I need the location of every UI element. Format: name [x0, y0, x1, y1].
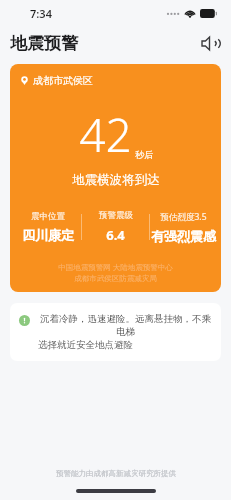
button[interactable]: 沉着冷静，迅速避险。远离悬挂物，不乘电梯	[10, 303, 221, 361]
staticText: 6.4	[106, 226, 125, 244]
staticText: 42	[79, 103, 132, 166]
staticText: 有强烈震感	[151, 228, 216, 244]
staticText: 成都市武侯区	[33, 74, 93, 87]
staticText: 秒后	[135, 149, 153, 160]
staticText: 预警震级	[99, 210, 133, 221]
button[interactable]: 成都市武侯区	[10, 64, 221, 292]
staticText: 地震横波将到达	[72, 172, 160, 188]
staticText: 7:34	[30, 6, 52, 21]
staticText: 四川康定	[22, 227, 74, 243]
staticText: 选择就近安全地点避险	[38, 339, 133, 351]
staticText: 成都市武侯区防震减灾局	[74, 274, 157, 283]
staticText: 震中位置	[31, 211, 65, 222]
staticText: 中国地震预警网 大陆地震预警中心	[58, 262, 173, 272]
staticText: 沉着冷静，迅速避险。远离悬挂物，不乘电梯	[38, 313, 213, 338]
staticText: 预警能力由成都高新减灾研究所提供	[56, 469, 176, 478]
staticText: 地震预警	[10, 33, 78, 54]
button[interactable]: Sound alert	[197, 31, 221, 55]
staticText: 预估烈度3.5	[160, 211, 207, 223]
